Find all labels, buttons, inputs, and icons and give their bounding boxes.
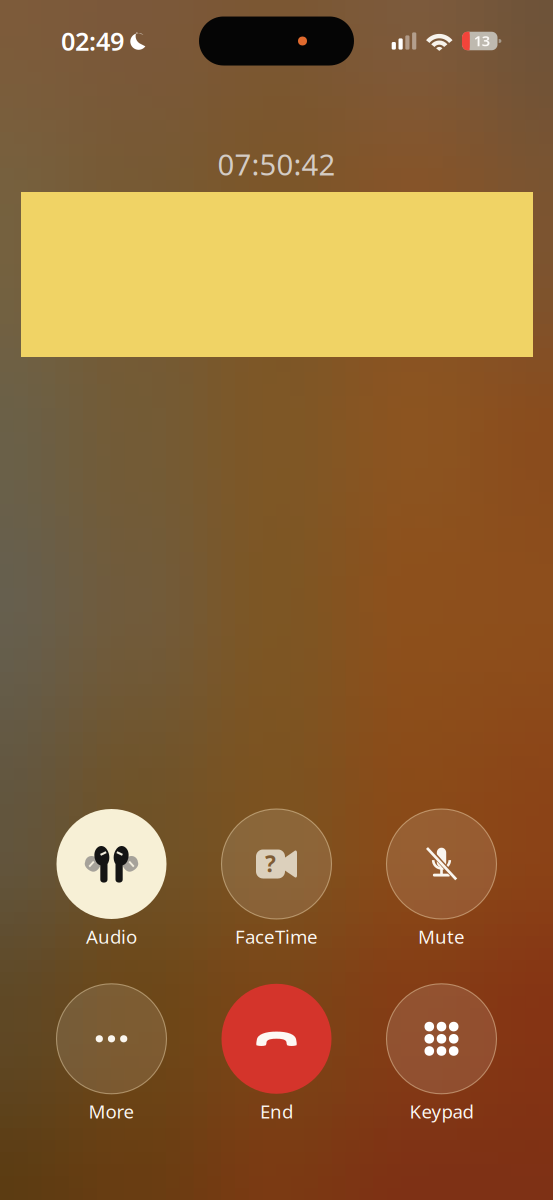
staticText: 07:50:42 bbox=[217, 144, 335, 183]
button[interactable]: Mute bbox=[359, 809, 524, 949]
staticText: Mute bbox=[418, 924, 465, 949]
staticText: 02:49 bbox=[61, 24, 124, 58]
button[interactable]: End bbox=[194, 984, 359, 1124]
staticText: ? bbox=[265, 848, 276, 878]
button[interactable]: Audio bbox=[29, 809, 194, 949]
staticText: Keypad bbox=[409, 1099, 473, 1124]
staticText: Audio bbox=[86, 924, 137, 949]
staticText: End bbox=[260, 1099, 293, 1124]
button[interactable]: ? bbox=[194, 809, 359, 949]
staticText: More bbox=[88, 1099, 134, 1124]
staticText: 13 bbox=[474, 31, 490, 50]
button[interactable]: More bbox=[29, 984, 194, 1124]
staticText: FaceTime bbox=[235, 924, 318, 949]
button[interactable]: Keypad bbox=[359, 984, 524, 1124]
